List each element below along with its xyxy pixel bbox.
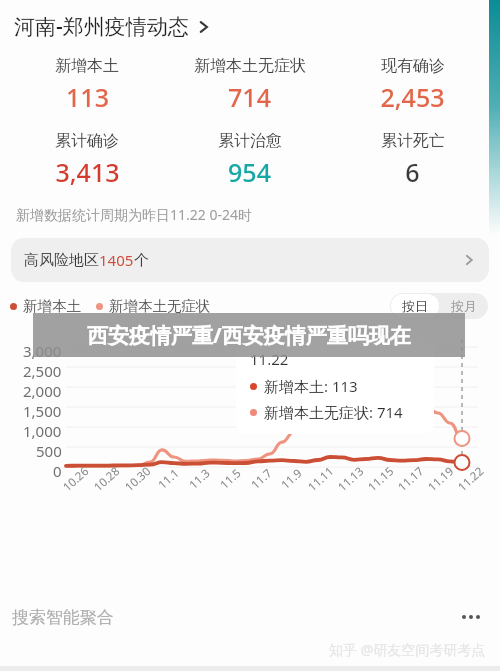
staticText: 11.19 bbox=[424, 463, 457, 495]
staticText: 2,500 bbox=[23, 361, 62, 381]
staticText: 新增本土无症状: 714 bbox=[264, 402, 403, 422]
staticText: 11.9 bbox=[278, 465, 305, 493]
staticText: 按日 bbox=[402, 298, 428, 314]
staticText: 10.26 bbox=[59, 463, 92, 495]
staticText: 河南-郑州疫情动态 bbox=[14, 12, 189, 41]
staticText: 11.13 bbox=[334, 463, 367, 495]
staticText: 11.3 bbox=[186, 465, 213, 493]
staticText: 11.22 bbox=[250, 349, 289, 369]
staticText: 10.30 bbox=[121, 463, 154, 495]
staticText: 113 bbox=[66, 80, 109, 114]
staticText: 现有确诊 bbox=[381, 56, 445, 76]
staticText: 11.7 bbox=[248, 465, 275, 493]
staticText: 新增本土无症状 bbox=[194, 56, 306, 76]
staticText: 累计死亡 bbox=[381, 131, 445, 151]
staticText: 1,000 bbox=[23, 421, 62, 441]
staticText: 10.28 bbox=[90, 463, 123, 495]
staticText: 11.15 bbox=[364, 463, 397, 495]
staticText: 新增本土无症状 bbox=[109, 297, 211, 315]
button[interactable]: 高风险地区 bbox=[11, 238, 489, 282]
staticText: 新增数据统计周期为昨日11.22 0-24时 bbox=[16, 205, 252, 224]
button[interactable]: 按月 bbox=[440, 294, 488, 318]
staticText: 2,000 bbox=[23, 381, 62, 401]
staticText: 11.22 bbox=[454, 463, 487, 495]
staticText: 搜索智能聚合 bbox=[12, 607, 114, 628]
button[interactable]: 按日 bbox=[391, 294, 439, 318]
staticText: 新增本土 bbox=[23, 297, 81, 315]
staticText: 11.1 bbox=[155, 465, 182, 493]
button[interactable]: More options bbox=[458, 611, 484, 623]
staticText: 累计治愈 bbox=[218, 131, 282, 151]
staticText: 714 bbox=[228, 80, 271, 114]
staticText: 个 bbox=[134, 251, 149, 270]
staticText: 西安疫情严重/西安疫情严重吗现在 bbox=[87, 321, 411, 350]
staticText: 累计确诊 bbox=[55, 131, 119, 151]
staticText: 2,453 bbox=[380, 80, 445, 114]
staticText: 954 bbox=[228, 155, 271, 189]
staticText: 1405 bbox=[99, 250, 134, 270]
staticText: 6 bbox=[405, 155, 420, 189]
staticText: 3,000 bbox=[23, 341, 62, 361]
staticText: 500 bbox=[36, 441, 62, 461]
staticText: 高风险地区 bbox=[24, 251, 99, 270]
button[interactable]: 搜索智能聚合 bbox=[0, 594, 500, 640]
staticText: 新增本土: 113 bbox=[264, 376, 358, 396]
staticText: 1,500 bbox=[23, 401, 62, 421]
staticText: 0 bbox=[53, 461, 62, 481]
staticText: 知乎 @研友空间考研考点 bbox=[329, 640, 486, 659]
staticText: 11.17 bbox=[394, 463, 427, 495]
staticText: 3,413 bbox=[55, 155, 120, 189]
staticText: 11.5 bbox=[217, 465, 244, 493]
button[interactable]: 河南-郑州疫情动态 bbox=[0, 10, 226, 43]
staticText: 按月 bbox=[451, 298, 477, 314]
staticText: 新增本土 bbox=[55, 56, 119, 76]
staticText: 11.11 bbox=[304, 463, 337, 495]
